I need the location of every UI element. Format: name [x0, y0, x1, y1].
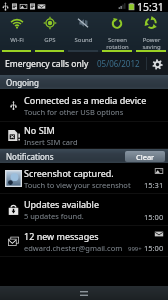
staticText: Sound	[74, 36, 93, 44]
button[interactable]: Sound	[66, 12, 100, 52]
button[interactable]: Screen rotation	[100, 12, 134, 52]
staticText: 05/06/2012	[97, 58, 140, 69]
staticText: Touch for other USB options	[24, 107, 124, 117]
button[interactable]: Settings	[150, 57, 164, 71]
staticText: Power saving	[142, 36, 161, 51]
staticText: 999+	[128, 245, 142, 253]
button[interactable]: GPS	[33, 12, 66, 52]
button[interactable]: Power saving	[134, 12, 168, 52]
button[interactable]: Screenshot captured.	[0, 163, 168, 194]
staticText: Clear	[136, 152, 155, 162]
button[interactable]: 12 new messages	[0, 226, 168, 257]
button[interactable]: Connected as a media device	[0, 89, 168, 122]
staticText: Notifications	[6, 151, 54, 162]
staticText: Updates available	[24, 198, 99, 210]
staticText: Connected as a media device	[24, 94, 147, 106]
staticText: 15:31	[137, 0, 164, 12]
staticText: GPS	[44, 36, 56, 44]
staticText: 12 new messages	[24, 230, 99, 242]
staticText: 15:31	[144, 180, 164, 190]
staticText: 15:00	[144, 212, 164, 222]
button[interactable]: Wi-Fi	[0, 12, 33, 52]
staticText: edward.chester@gmail.com	[24, 243, 123, 253]
staticText: Emergency calls only	[5, 58, 89, 70]
staticText: Screen rotation	[106, 36, 129, 51]
staticText: Wi-Fi	[10, 36, 24, 44]
button[interactable]: Clear	[125, 151, 165, 162]
staticText: Screenshot captured.	[24, 167, 114, 179]
staticText: Insert SIM card	[24, 137, 78, 147]
button[interactable]: No SIM	[0, 122, 168, 149]
staticText: 5 updates found.	[24, 211, 84, 221]
staticText: Ongoing	[6, 77, 39, 88]
staticText: Touch to view your screenshot	[24, 180, 131, 190]
staticText: No SIM	[24, 124, 55, 136]
staticText: 15:00	[144, 243, 164, 253]
button[interactable]: Close notification panel	[0, 286, 168, 300]
button[interactable]: Updates available	[0, 194, 168, 226]
